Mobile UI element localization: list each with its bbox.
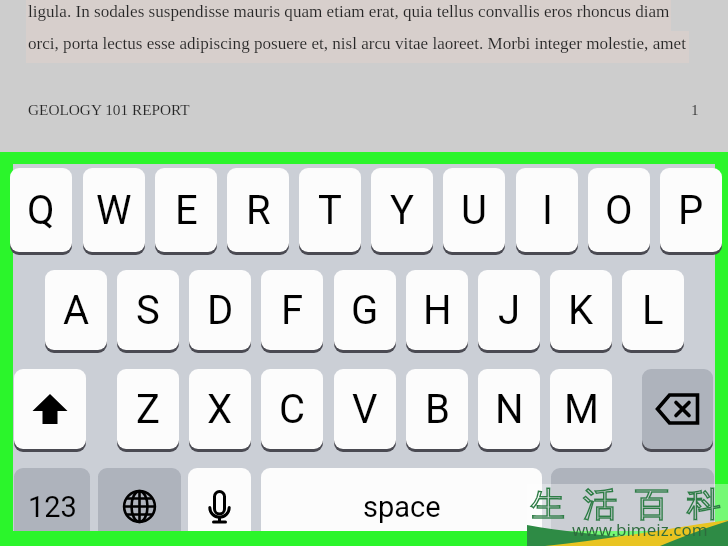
button[interactable]: X [189,369,251,449]
staticText: Z [136,386,160,433]
staticText: J [498,287,521,334]
staticText: 百 [635,483,669,526]
staticText: Y [390,187,415,234]
button[interactable]: K [550,270,612,350]
button[interactable]: S [117,270,179,350]
staticText: O [605,187,633,234]
button[interactable]: E [155,168,217,252]
staticText: ligula. In sodales suspendisse mauris qu… [28,2,670,21]
button[interactable]: Q [10,168,72,252]
staticText: M [564,386,599,433]
staticText: Q [27,187,55,234]
staticText: V [352,386,378,433]
button[interactable]: M [550,369,612,449]
staticText: 1 [691,101,699,118]
button[interactable]: V [334,369,396,449]
button[interactable] [98,468,181,545]
button[interactable]: W [83,168,145,252]
button[interactable] [551,468,714,545]
button[interactable]: space [261,468,542,545]
staticText: GEOLOGY 101 REPORT [28,101,190,118]
staticText: orci, porta lectus esse adipiscing posue… [28,34,686,53]
staticText: T [318,187,342,234]
button[interactable] [188,468,251,545]
staticText: C [279,386,306,433]
staticText: W [96,187,132,234]
staticText: N [495,386,524,433]
staticText: S [136,287,160,334]
button[interactable] [14,369,86,449]
staticText: U [461,187,487,234]
button[interactable]: T [299,168,361,252]
staticText: G [351,287,379,334]
button[interactable]: Z [117,369,179,449]
button[interactable]: G [334,270,396,350]
staticText: 科 [687,483,721,526]
staticText: F [281,287,304,334]
button[interactable]: P [660,168,722,252]
staticText: H [423,287,452,334]
other: Dictate [188,468,251,545]
staticText: B [425,386,450,433]
button[interactable]: D [189,270,251,350]
staticText: X [207,386,233,433]
staticText: www.bimeiz.com [572,518,708,541]
staticText: 活 [583,483,617,526]
button[interactable]: 123 [14,468,90,545]
staticText: D [207,287,234,334]
staticText: I [542,187,553,234]
button[interactable]: O [588,168,650,252]
staticText: A [63,287,90,334]
button[interactable]: R [227,168,289,252]
button[interactable]: N [478,369,540,449]
button[interactable]: F [261,270,323,350]
other: Change keyboard [98,468,181,545]
staticText: K [568,287,594,334]
staticText: space [363,490,441,524]
staticText: R [246,187,271,234]
button[interactable]: J [478,270,540,350]
button[interactable]: B [406,369,468,449]
button[interactable]: L [622,270,684,350]
staticText: L [642,287,664,334]
staticText: E [175,187,198,234]
other: Shift [14,369,86,449]
button[interactable]: C [261,369,323,449]
button[interactable]: H [406,270,468,350]
button[interactable]: A [45,270,107,350]
button[interactable] [642,369,713,449]
button[interactable]: I [516,168,578,252]
other: Backspace [642,369,713,449]
staticText: P [678,187,704,234]
button[interactable]: U [443,168,505,252]
staticText: 生 [531,483,565,526]
button[interactable]: Y [371,168,433,252]
staticText: 123 [28,490,77,524]
